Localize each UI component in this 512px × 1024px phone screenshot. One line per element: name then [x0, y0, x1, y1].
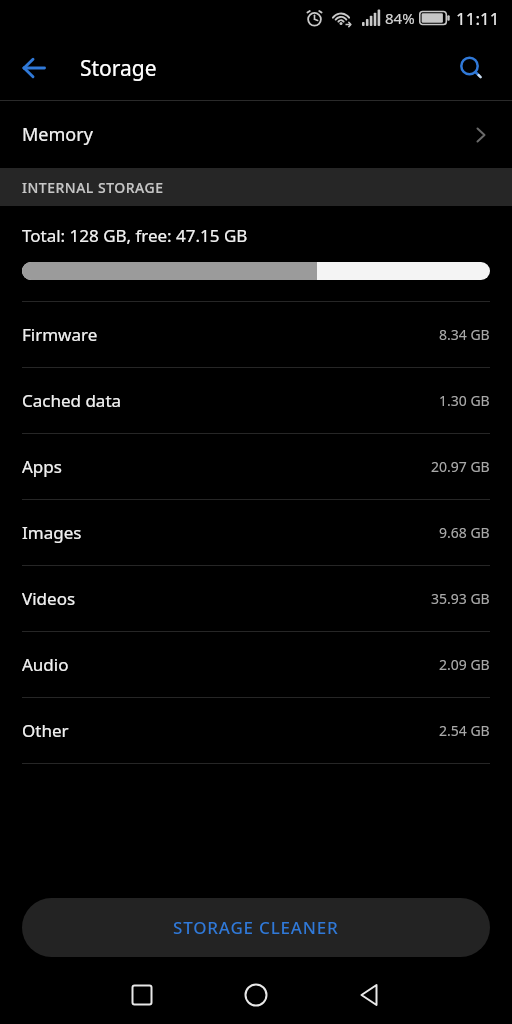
button[interactable]: [348, 973, 392, 1017]
staticText: Total: 128 GB, free: 47.15 GB: [22, 224, 248, 247]
button[interactable]: STORAGE CLEANER: [22, 898, 490, 957]
staticText: Memory: [22, 122, 93, 147]
button[interactable]: [120, 973, 164, 1017]
staticText: 1.30 GB: [439, 391, 490, 410]
staticText: Cached data: [22, 389, 122, 412]
staticText: 9.68 GB: [439, 523, 490, 542]
staticText: STORAGE CLEANER: [173, 916, 339, 939]
staticText: Other: [22, 719, 69, 742]
staticText: 11:11: [456, 7, 500, 30]
button[interactable]: Videos: [0, 566, 512, 631]
button[interactable]: Audio: [0, 632, 512, 697]
staticText: 8.34 GB: [439, 325, 490, 344]
button[interactable]: [451, 48, 491, 88]
staticText: Storage: [80, 54, 157, 83]
staticText: Audio: [22, 653, 69, 676]
button[interactable]: Memory: [0, 101, 512, 168]
staticText: 2.54 GB: [439, 721, 490, 740]
staticText: Firmware: [22, 323, 98, 346]
staticText: 2.09 GB: [439, 655, 490, 674]
staticText: Apps: [22, 455, 62, 478]
staticText: Videos: [22, 587, 76, 610]
button[interactable]: Firmware: [0, 302, 512, 367]
staticText: 20.97 GB: [431, 457, 490, 476]
staticText: Images: [22, 521, 82, 544]
staticText: 84%: [385, 8, 415, 28]
staticText: 35.93 GB: [431, 589, 490, 608]
button[interactable]: Apps: [0, 434, 512, 499]
button[interactable]: [234, 973, 278, 1017]
button[interactable]: Other: [0, 698, 512, 763]
staticText: INTERNAL STORAGE: [22, 178, 164, 197]
button[interactable]: Images: [0, 500, 512, 565]
button[interactable]: [14, 48, 54, 88]
button[interactable]: Cached data: [0, 368, 512, 433]
